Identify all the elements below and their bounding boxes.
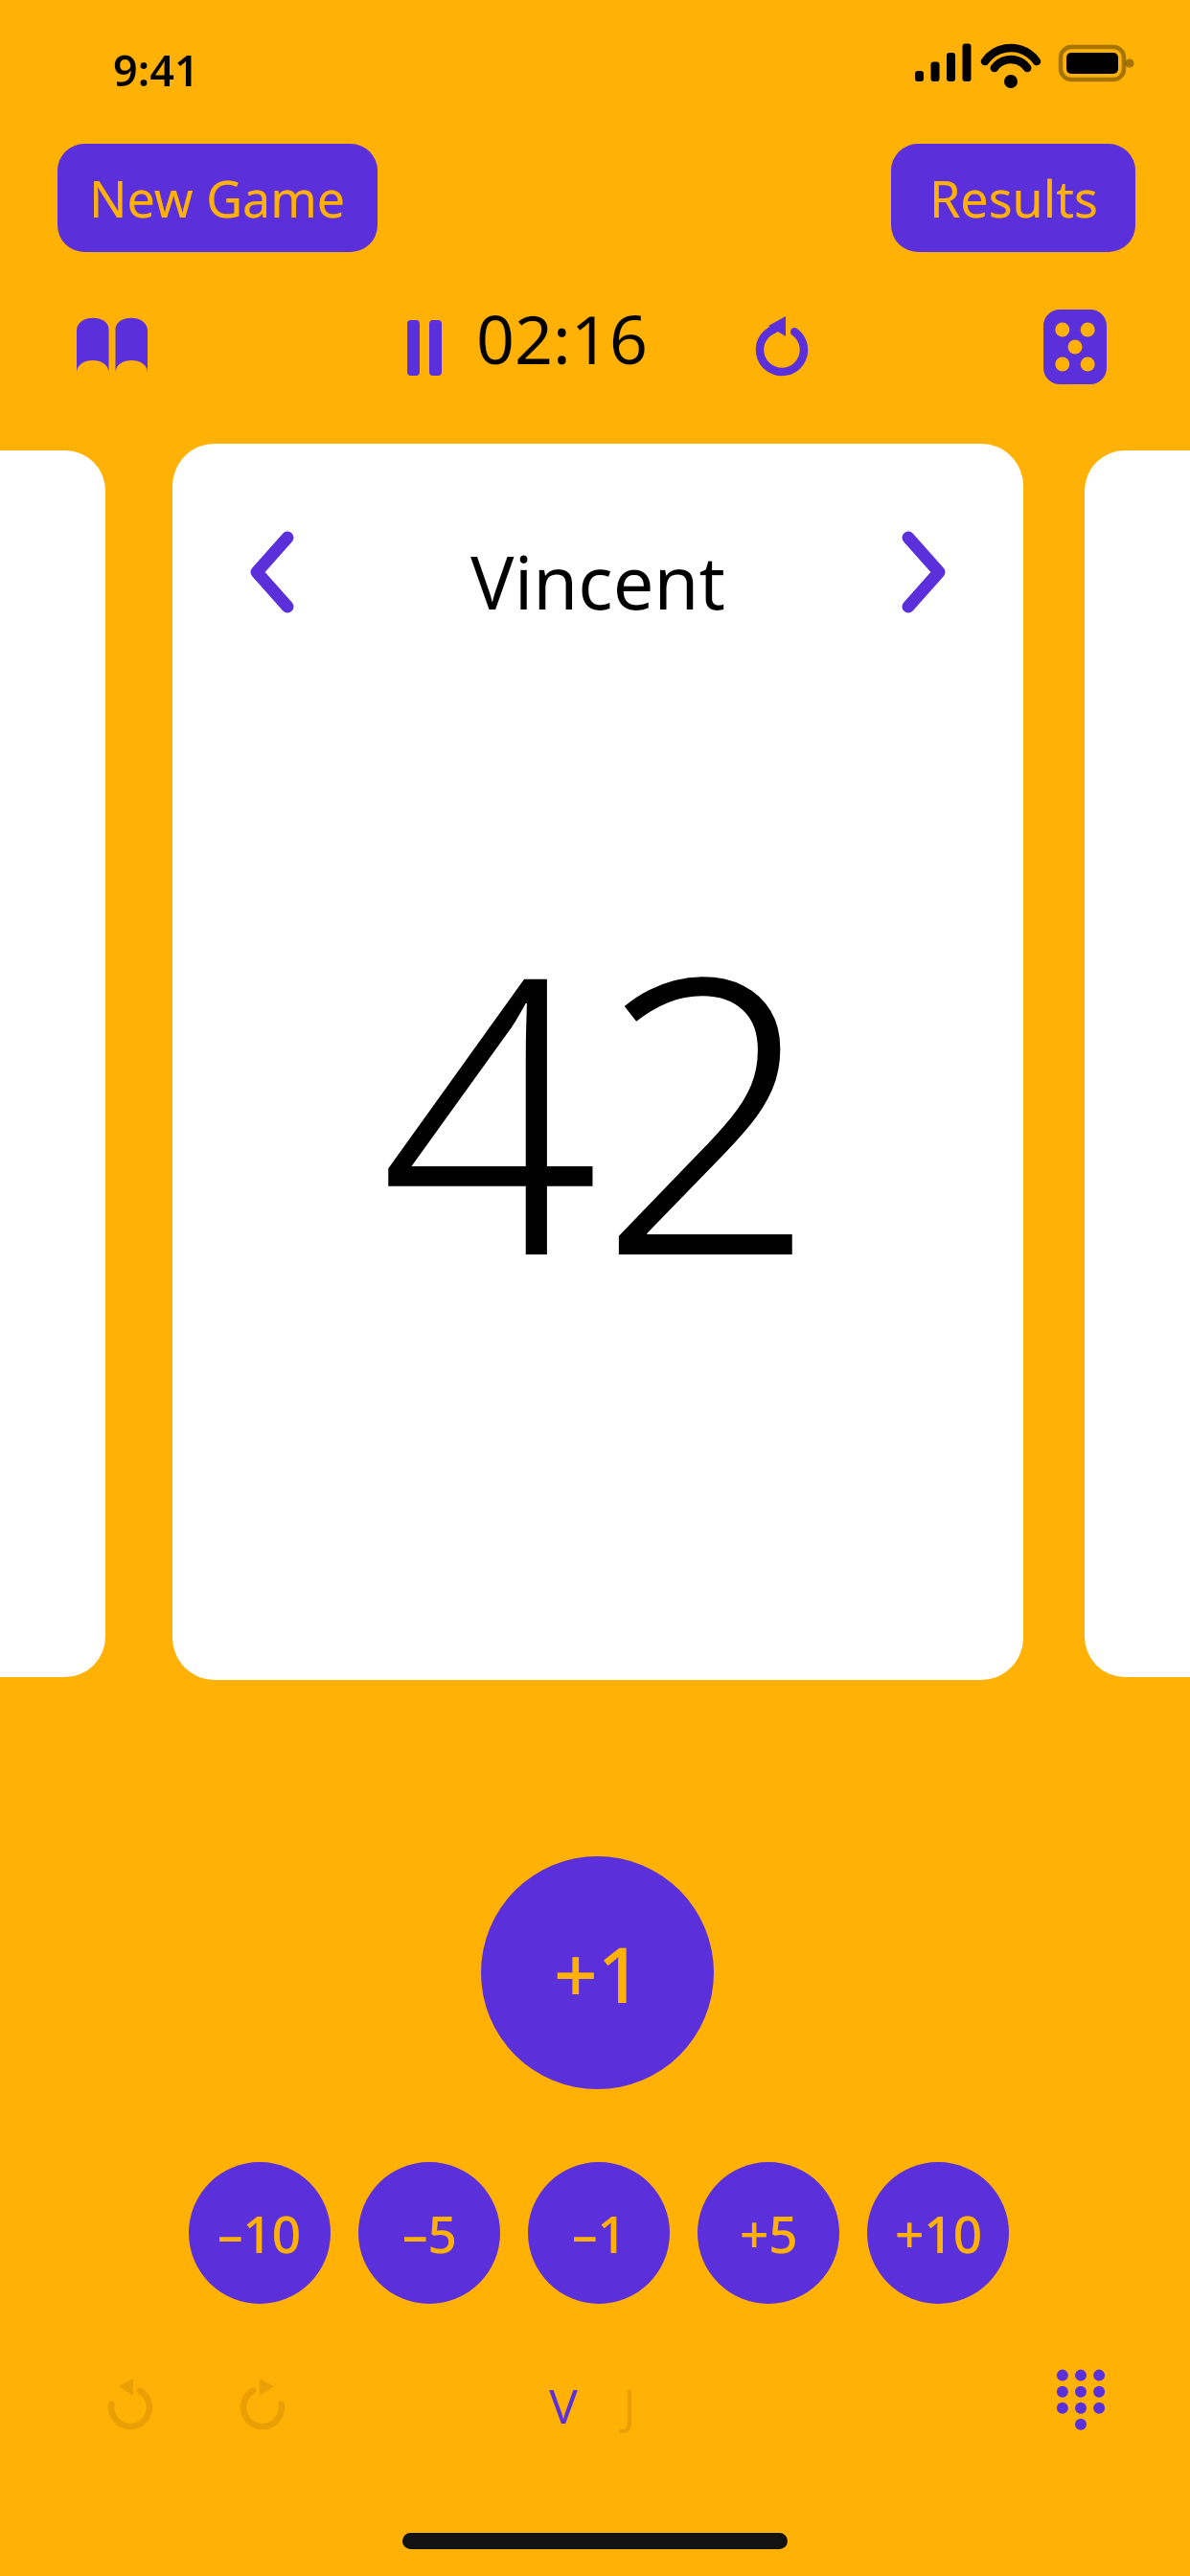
button[interactable] <box>1085 450 1190 1677</box>
staticText: +1 <box>554 1920 642 2025</box>
staticText: –5 <box>402 2198 457 2267</box>
button[interactable]: +10 <box>867 2162 1009 2304</box>
button[interactable]: +1 <box>481 1856 714 2089</box>
button[interactable] <box>0 450 105 1677</box>
button[interactable]: Pause timer <box>381 305 468 391</box>
button[interactable]: More options <box>1027 2348 1134 2455</box>
button[interactable]: Previous player <box>209 509 335 635</box>
staticText: 42 <box>379 844 817 1367</box>
button[interactable]: Results <box>891 144 1135 252</box>
staticText: +10 <box>895 2198 982 2267</box>
staticText: Results <box>929 164 1098 232</box>
staticText: V <box>549 2373 578 2438</box>
button[interactable]: Undo <box>77 2350 184 2457</box>
button[interactable]: Previous player <box>172 444 1023 1680</box>
button[interactable]: Reset timer <box>738 302 826 390</box>
staticText: 02:16 <box>476 292 648 383</box>
staticText: J <box>623 2373 636 2438</box>
button[interactable]: +5 <box>698 2162 839 2304</box>
staticText: 9:41 <box>113 40 199 99</box>
staticText: –10 <box>217 2198 302 2267</box>
button[interactable]: Roll dice <box>1025 297 1125 397</box>
button[interactable]: Rules <box>59 297 165 393</box>
button[interactable]: –10 <box>189 2162 331 2304</box>
staticText: Vincent <box>470 532 725 632</box>
button[interactable]: Redo <box>209 2350 316 2457</box>
staticText: +5 <box>740 2198 798 2267</box>
button[interactable]: New Game <box>57 144 378 252</box>
button[interactable]: –5 <box>358 2162 500 2304</box>
staticText: New Game <box>89 164 346 232</box>
button[interactable]: Next player <box>860 509 987 635</box>
button[interactable]: –1 <box>528 2162 670 2304</box>
staticText: –1 <box>572 2198 627 2267</box>
